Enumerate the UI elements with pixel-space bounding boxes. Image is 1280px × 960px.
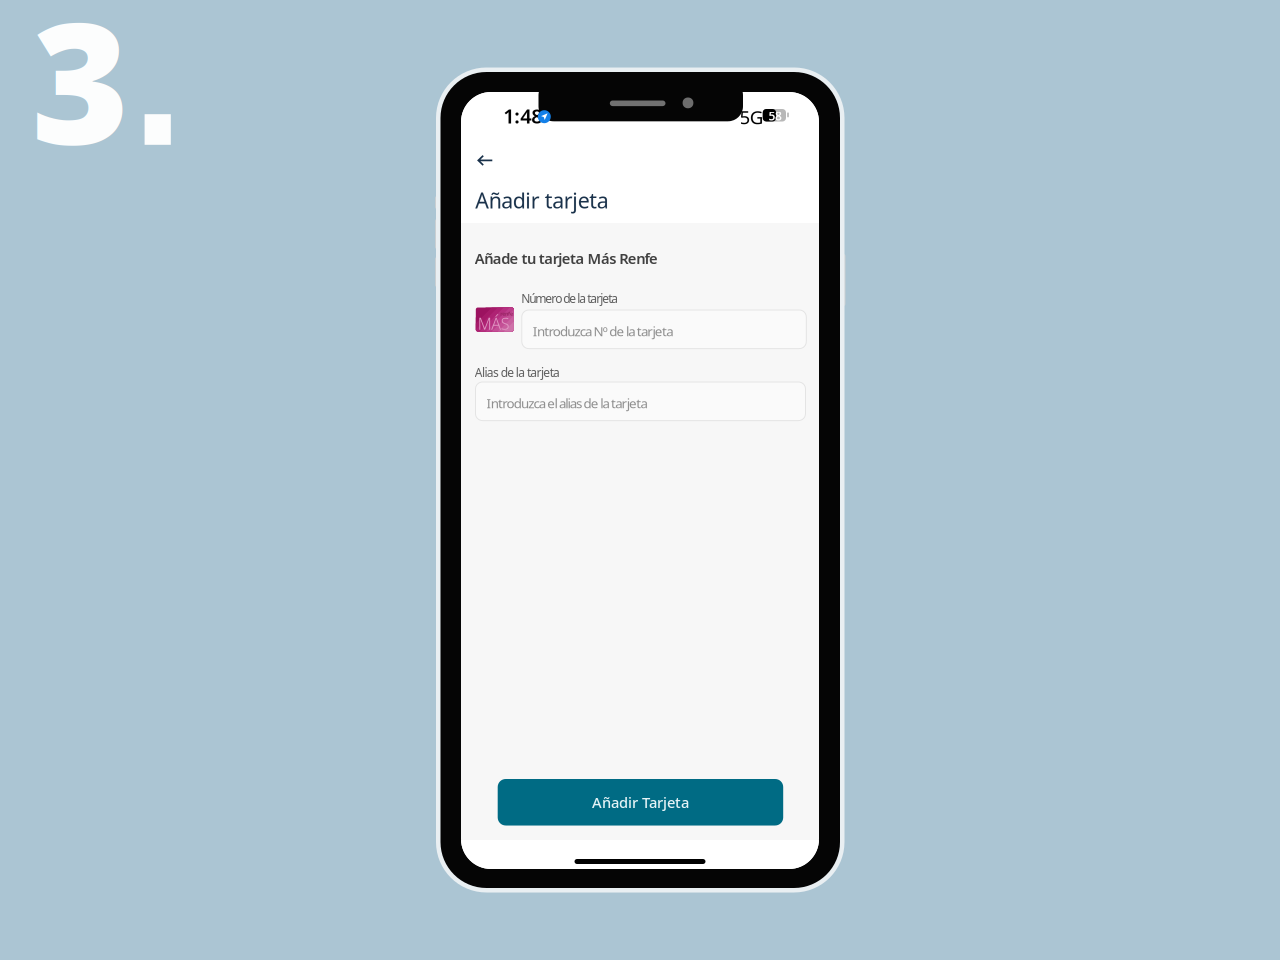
- staticText: Alias de la tarjeta: [475, 364, 560, 380]
- staticText: Introduzca el alias de la tarjeta: [486, 394, 647, 412]
- button[interactable]: Añadir Tarjeta: [498, 779, 783, 825]
- staticText: Número de la tarjeta: [521, 290, 618, 306]
- staticText: Añade tu tarjeta Más Renfe: [475, 248, 658, 268]
- button[interactable]: Back: [470, 147, 500, 173]
- staticText: MÁS: [478, 313, 510, 334]
- staticText: Añadir Tarjeta: [592, 792, 689, 812]
- staticText: 5G: [740, 104, 764, 129]
- staticText: 1:48: [503, 102, 542, 129]
- staticText: renfe: [500, 310, 513, 317]
- staticText: Añadir tarjeta: [475, 186, 609, 214]
- staticText: 58: [768, 108, 782, 124]
- staticText: 3: [31, 0, 129, 190]
- staticText: Introduzca Nº de la tarjeta: [533, 322, 673, 340]
